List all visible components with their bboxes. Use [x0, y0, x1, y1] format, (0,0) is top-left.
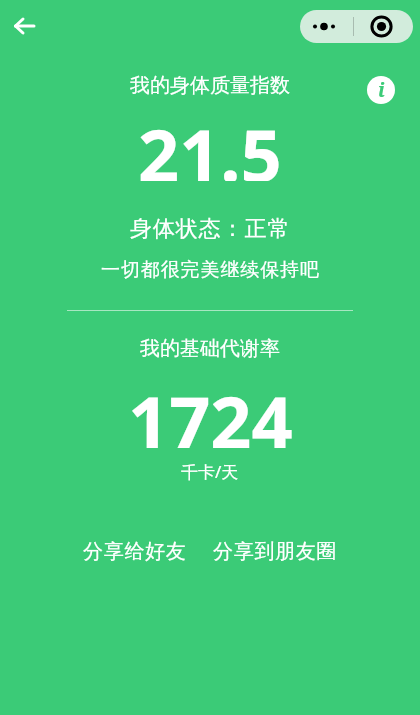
- staticText: 一切都很完美继续保持吧: [101, 258, 320, 282]
- staticText: 我的身体质量指数: [130, 73, 290, 98]
- staticText: 1724: [128, 372, 293, 448]
- staticText: 分享到朋友圈: [213, 539, 338, 564]
- staticText: 我的基础代谢率: [140, 336, 280, 361]
- staticText: i: [378, 77, 385, 103]
- button[interactable]: [356, 10, 413, 43]
- button[interactable]: 分享到朋友圈: [213, 539, 338, 564]
- button[interactable]: 分享给好友: [83, 539, 187, 564]
- staticText: 21.5: [138, 105, 282, 181]
- button[interactable]: i: [367, 76, 395, 104]
- staticText: 千卡/天: [181, 460, 239, 483]
- button[interactable]: [4, 8, 44, 44]
- staticText: 身体状态：正常: [130, 215, 291, 243]
- button[interactable]: [300, 10, 356, 43]
- staticText: 分享给好友: [83, 539, 187, 564]
